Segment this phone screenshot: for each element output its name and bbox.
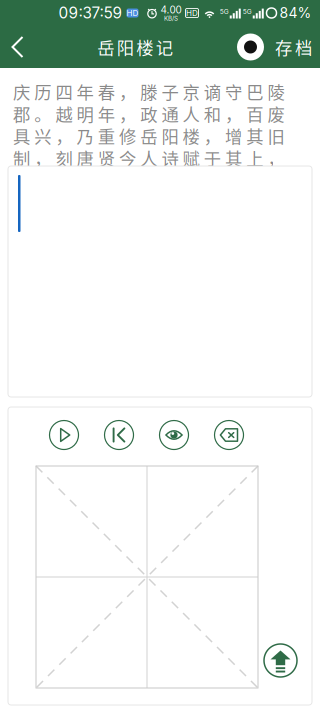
button[interactable]: 存档	[233, 27, 320, 66]
button[interactable]: Play	[47, 418, 81, 452]
button[interactable]: Restart	[102, 418, 136, 452]
staticText: 4.00	[160, 4, 181, 16]
staticText: 庆历四年春，滕子京谪守巴陵郡。越明年，政通人和，百废具兴，乃重修岳阳楼，增其旧制…	[13, 79, 306, 192]
staticText: 5G	[243, 7, 252, 15]
staticText: 岳阳楼记	[97, 34, 173, 60]
button[interactable]: Back	[0, 27, 37, 67]
staticText: HD	[186, 8, 198, 18]
staticText: HD	[126, 8, 138, 18]
button[interactable]: Export	[260, 640, 301, 681]
staticText: 存档	[275, 34, 312, 60]
staticText: 5G	[220, 7, 229, 15]
staticText: 84%	[279, 4, 311, 21]
staticText: 09:37:59	[58, 4, 122, 22]
button[interactable]: Clear	[212, 418, 246, 452]
button[interactable]: Preview	[157, 418, 191, 452]
staticText: KB/S	[164, 15, 178, 22]
